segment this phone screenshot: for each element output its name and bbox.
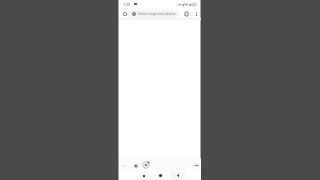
button[interactable]: Home	[120, 9, 129, 18]
button[interactable]: Tabs	[182, 9, 191, 18]
button[interactable]: Search or type web address	[128, 10, 179, 18]
button[interactable]: More options	[192, 10, 200, 18]
button[interactable]: Home	[156, 171, 165, 180]
button[interactable]: Back	[120, 161, 129, 170]
staticText: 1:39	[123, 2, 131, 7]
button[interactable]: Back	[173, 171, 182, 180]
staticText: Search or type web address	[138, 12, 176, 16]
button[interactable]: Reload	[131, 161, 140, 170]
button[interactable]: Forward	[192, 161, 201, 170]
button[interactable]: Lens	[141, 160, 151, 170]
button[interactable]: Recents	[139, 171, 148, 180]
